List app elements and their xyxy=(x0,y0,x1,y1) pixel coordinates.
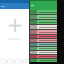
button[interactable]: List row 3 xyxy=(30,20,57,24)
button[interactable]: List row 12 xyxy=(30,59,57,62)
button[interactable]: List row 2 xyxy=(30,15,57,19)
button[interactable]: List row 8 xyxy=(30,43,57,46)
button[interactable]: List row 7 xyxy=(30,39,57,42)
button[interactable]: List row 5 xyxy=(30,30,57,34)
button[interactable]: List row 1 xyxy=(30,10,57,14)
button[interactable]: List row 9 xyxy=(30,47,57,50)
button[interactable]: List row 11 xyxy=(30,55,57,58)
button[interactable]: List row 4 xyxy=(30,25,57,29)
button[interactable]: Header xyxy=(30,0,57,10)
button[interactable]: Open first screenshot xyxy=(0,0,29,64)
button[interactable]: Open second screenshot xyxy=(30,0,57,64)
button[interactable]: App bar xyxy=(0,3,29,9)
button[interactable]: List row 6 xyxy=(30,35,57,38)
button[interactable]: List row 10 xyxy=(30,51,57,54)
